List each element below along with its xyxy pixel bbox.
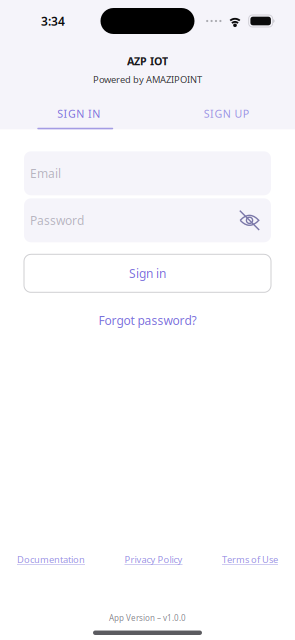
button[interactable]: SIGN IN [0, 107, 147, 129]
staticText: AZP IOT [127, 54, 168, 68]
button[interactable]: Show password [239, 210, 260, 231]
button[interactable]: Documentation [17, 549, 85, 570]
staticText: Privacy Policy [124, 553, 182, 566]
button[interactable]: Forgot password? [98, 306, 196, 334]
staticText: Terms of Use [222, 553, 278, 566]
staticText: 3:34 [41, 13, 65, 29]
staticText: App Version – v1.0.0 [109, 613, 186, 623]
staticText: Documentation [17, 553, 85, 566]
staticText: Password [30, 212, 84, 228]
staticText: SIGN UP [204, 107, 249, 121]
staticText: SIGN IN [57, 107, 100, 121]
staticText: Sign in [129, 265, 166, 281]
button[interactable]: Terms of Use [222, 549, 278, 570]
staticText: Powered by AMAZIPOINT [93, 73, 202, 86]
staticText: Forgot password? [98, 312, 196, 328]
button[interactable]: Privacy Policy [124, 549, 182, 570]
button[interactable]: SIGN UP [147, 107, 295, 129]
staticText: Email [30, 165, 61, 181]
button[interactable]: Sign in [24, 254, 271, 292]
